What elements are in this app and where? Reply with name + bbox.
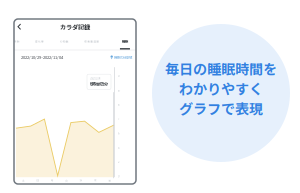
staticText: 6時間05分 <box>90 81 108 87</box>
staticText: 2 <box>118 160 119 164</box>
button[interactable]: 体表面温度 <box>83 35 100 50</box>
staticText: 0 <box>118 174 119 178</box>
button[interactable]: 体内年齢 <box>7 35 21 50</box>
staticText: カラダ記録 <box>60 22 90 31</box>
staticText: 土 <box>22 178 25 182</box>
staticText: 火 <box>65 178 68 182</box>
staticText: 体表面温度 <box>84 39 99 43</box>
staticText: 金 <box>108 178 111 182</box>
staticText: 木 <box>94 178 97 182</box>
staticText: 8 <box>118 103 119 107</box>
staticText: 7 <box>118 117 119 121</box>
button[interactable]: 睡眠の目安値 <box>110 55 132 60</box>
staticText: 心拍数 <box>60 39 69 43</box>
staticText: 変化量 <box>35 39 44 43</box>
staticText: 10 <box>118 88 120 92</box>
staticText: 睡眠の目安値 <box>114 55 132 60</box>
staticText: グラフで表現 <box>179 98 263 118</box>
staticText: 睡眠 <box>122 39 128 44</box>
button[interactable]: 睡眠 <box>113 35 137 50</box>
staticText: 月 <box>51 178 54 182</box>
staticText: わかりやすく <box>179 78 263 98</box>
staticText: 2022/10/29~2022/11/04 <box>21 54 63 60</box>
staticText: 日 <box>36 178 39 182</box>
staticText: 12 <box>118 74 120 78</box>
staticText: 水 <box>79 178 82 182</box>
button[interactable]: Back <box>14 20 26 33</box>
staticText: 6 <box>118 131 119 135</box>
button[interactable]: 心拍数 <box>58 35 70 50</box>
button[interactable]: 変化量 <box>33 35 45 50</box>
staticText: 毎日の睡眠時間を <box>165 58 277 78</box>
staticText: 2022/11/04 <box>90 77 100 80</box>
staticText: 体内年齢 <box>8 39 20 43</box>
staticText: 4 <box>118 146 119 150</box>
